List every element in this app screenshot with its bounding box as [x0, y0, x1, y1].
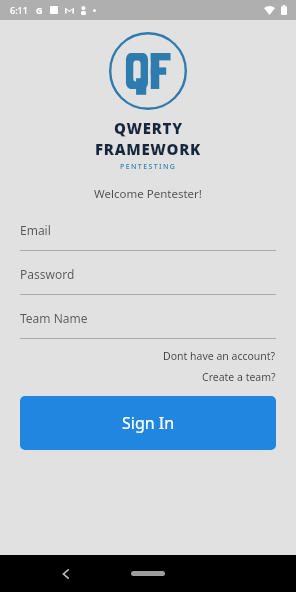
button[interactable]: Dont have an account?: [163, 348, 276, 364]
staticText: Welcome Pentester!: [0, 186, 296, 202]
button[interactable]: Home: [131, 571, 165, 576]
staticText: Sign In: [122, 412, 175, 434]
button[interactable]: Password: [20, 266, 276, 295]
staticText: 6:11: [10, 4, 28, 16]
staticText: PENTESTING: [120, 162, 177, 172]
button[interactable]: Team Name: [20, 310, 276, 339]
button[interactable]: Create a team?: [202, 369, 276, 385]
button[interactable]: Back: [52, 560, 80, 588]
staticText: FRAMEWORK: [95, 139, 202, 159]
staticText: Create a team?: [202, 370, 276, 384]
staticText: Team Name: [20, 310, 88, 326]
staticText: Dont have an account?: [163, 349, 276, 363]
button[interactable]: Sign In: [20, 396, 276, 450]
staticText: Email: [20, 222, 51, 238]
staticText: Password: [20, 266, 75, 282]
button[interactable]: Email: [20, 222, 276, 251]
staticText: G: [36, 4, 43, 16]
staticText: QWERTY: [114, 118, 183, 138]
